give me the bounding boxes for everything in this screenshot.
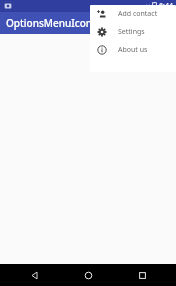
button[interactable]: About us xyxy=(90,41,176,59)
button[interactable]: Settings xyxy=(90,23,176,41)
staticText: Settings xyxy=(118,27,145,37)
staticText: OptionsMenuIcon xyxy=(6,16,93,30)
staticText: About us xyxy=(118,45,148,55)
staticText: 6:44 xyxy=(159,1,173,11)
button[interactable]: Add contact xyxy=(90,5,176,23)
staticText: Add contact xyxy=(118,9,158,19)
button[interactable]: Recent apps xyxy=(122,264,162,286)
button[interactable]: Back xyxy=(14,264,54,286)
button[interactable]: Home xyxy=(68,264,108,286)
